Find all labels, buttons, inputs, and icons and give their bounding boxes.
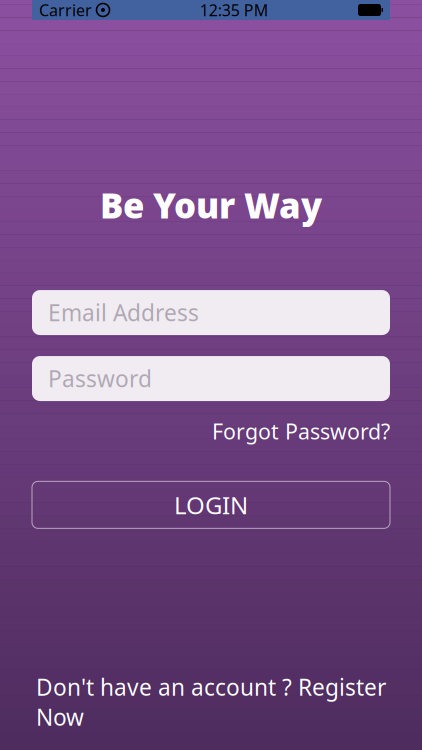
staticText: 12:35 PM <box>200 0 269 21</box>
button[interactable]: Forgot Password? <box>212 417 390 445</box>
staticText: Be Your Way <box>100 182 322 228</box>
staticText: Password <box>48 363 152 394</box>
staticText <box>92 0 96 21</box>
staticText: LOGIN <box>174 489 248 521</box>
button[interactable]: Email Address <box>32 290 390 335</box>
staticText: Forgot Password? <box>212 417 390 445</box>
button[interactable]: Don't have an account ? Register Now <box>32 672 390 732</box>
button[interactable]: Password <box>32 356 390 401</box>
staticText: Carrier <box>39 0 92 21</box>
button[interactable]: LOGIN <box>32 481 390 528</box>
staticText: Email Address <box>48 297 199 328</box>
staticText: Don't have an account ? Register Now <box>36 672 386 732</box>
